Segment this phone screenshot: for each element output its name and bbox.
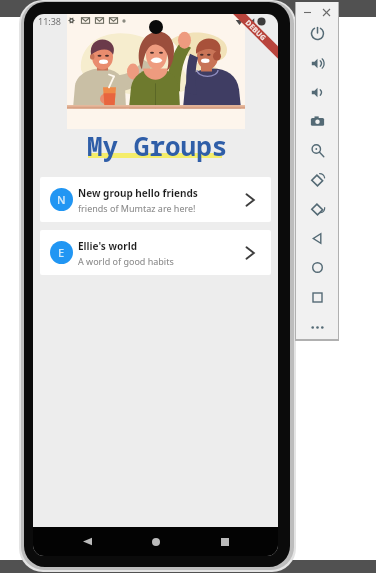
button[interactable]: Close bbox=[319, 5, 334, 20]
staticText: My Groups bbox=[87, 128, 228, 163]
staticText: friends of Mumtaz are here! bbox=[78, 202, 196, 214]
button[interactable]: Home bbox=[141, 527, 170, 556]
button[interactable]: Rotate right bbox=[296, 195, 338, 223]
button[interactable]: Back bbox=[296, 224, 338, 252]
staticText: New group hello friends bbox=[78, 186, 198, 200]
staticText: Ellie's world bbox=[78, 239, 137, 253]
button[interactable]: Zoom bbox=[296, 136, 338, 164]
button[interactable]: Volume down bbox=[296, 78, 338, 106]
staticText: A world of good habits bbox=[78, 255, 174, 267]
staticText: DEBUG bbox=[244, 18, 268, 43]
button[interactable]: More options bbox=[296, 313, 338, 341]
button[interactable]: Take screenshot bbox=[296, 107, 338, 135]
staticText: 11:38 bbox=[38, 15, 62, 27]
button[interactable]: Home bbox=[296, 253, 338, 281]
button[interactable]: Power bbox=[296, 19, 338, 47]
button[interactable]: Back bbox=[73, 527, 102, 556]
button[interactable]: Recent apps bbox=[210, 527, 239, 556]
button[interactable]: Minimize bbox=[300, 5, 315, 20]
button[interactable]: Rotate left bbox=[296, 166, 338, 194]
button[interactable]: Volume up bbox=[296, 49, 338, 77]
button[interactable]: E bbox=[40, 230, 271, 275]
button[interactable]: Overview bbox=[296, 283, 338, 311]
button[interactable]: N bbox=[40, 177, 271, 222]
staticText: E bbox=[58, 245, 65, 260]
staticText: N bbox=[57, 192, 66, 207]
